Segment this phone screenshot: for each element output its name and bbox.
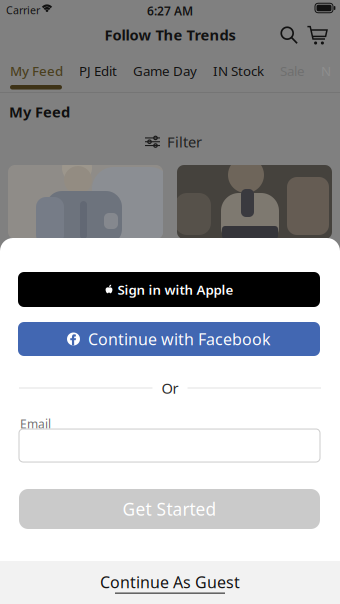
button[interactable]: IN Stock: [213, 62, 264, 80]
staticText: Continue with Facebook: [88, 328, 271, 350]
staticText: PJ Edit: [79, 62, 117, 80]
button[interactable]: Filter: [145, 132, 202, 151]
staticText: Carrier: [6, 3, 40, 17]
button[interactable]: Game Day: [133, 62, 197, 80]
button[interactable]: Cart: [305, 21, 329, 49]
button[interactable]: My Feed: [10, 62, 63, 80]
button[interactable]: N: [321, 62, 331, 80]
staticText: 6:27 AM: [147, 3, 193, 19]
staticText: Game Day: [133, 62, 197, 80]
staticText: Continue As Guest: [100, 571, 240, 593]
staticText: Follow The Trends: [104, 25, 235, 44]
button[interactable]: Sign in with Apple: [18, 272, 320, 307]
staticText: Email: [20, 416, 51, 432]
button[interactable]: PJ Edit: [79, 62, 117, 80]
staticText: My Feed: [9, 102, 70, 121]
staticText: Get Started: [122, 497, 216, 520]
staticText: Sale: [280, 62, 305, 80]
staticText: My Feed: [10, 62, 63, 80]
button[interactable]: Search: [277, 22, 301, 48]
button[interactable]: Get Started: [19, 489, 320, 529]
staticText: N: [321, 62, 331, 80]
staticText: Or: [161, 378, 178, 398]
button[interactable]: Continue with Facebook: [18, 322, 320, 356]
button[interactable]: Sale: [280, 62, 305, 80]
staticText: Filter: [167, 132, 202, 151]
staticText: IN Stock: [213, 62, 264, 80]
button[interactable]: Continue As Guest: [0, 561, 340, 604]
staticText: Sign in with Apple: [117, 281, 233, 298]
